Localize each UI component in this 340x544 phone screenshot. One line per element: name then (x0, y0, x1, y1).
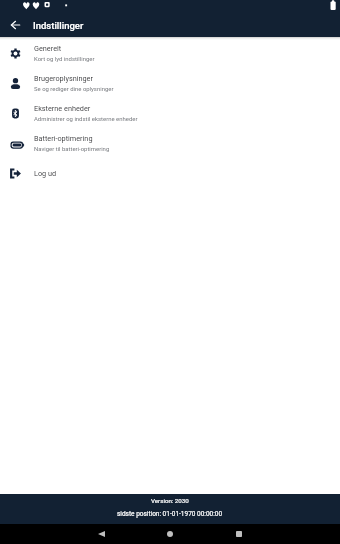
button[interactable]: Batteri-optimering (0, 128, 340, 158)
button[interactable]: Home (154, 524, 186, 544)
staticText: Administrer og indstil eksterne enheder (34, 115, 138, 122)
staticText: Version: 2030 (151, 497, 189, 504)
staticText: Batteri-optimering (34, 134, 93, 143)
staticText: Se og rediger dine oplysninger (34, 85, 114, 92)
button[interactable]: Back (0, 13, 31, 37)
staticText: Log ud (34, 169, 57, 178)
staticText: sidste position: 01-01-1970 00:00:00 (117, 510, 223, 518)
staticText: Naviger til batteri-optimering (34, 145, 110, 152)
staticText: Generelt (34, 44, 62, 53)
button[interactable]: Log ud (0, 158, 340, 188)
button[interactable]: Eksterne enheder (0, 98, 340, 128)
staticText: Brugeroplysninger (34, 74, 93, 83)
button[interactable]: Back (85, 524, 117, 544)
button[interactable]: Brugeroplysninger (0, 68, 340, 98)
staticText: Kort og lyd indstillinger (34, 55, 95, 62)
staticText: Indstillinger (33, 20, 84, 31)
button[interactable]: Generelt (0, 38, 340, 68)
button[interactable]: Recent apps (223, 524, 255, 544)
staticText: Eksterne enheder (34, 104, 91, 113)
